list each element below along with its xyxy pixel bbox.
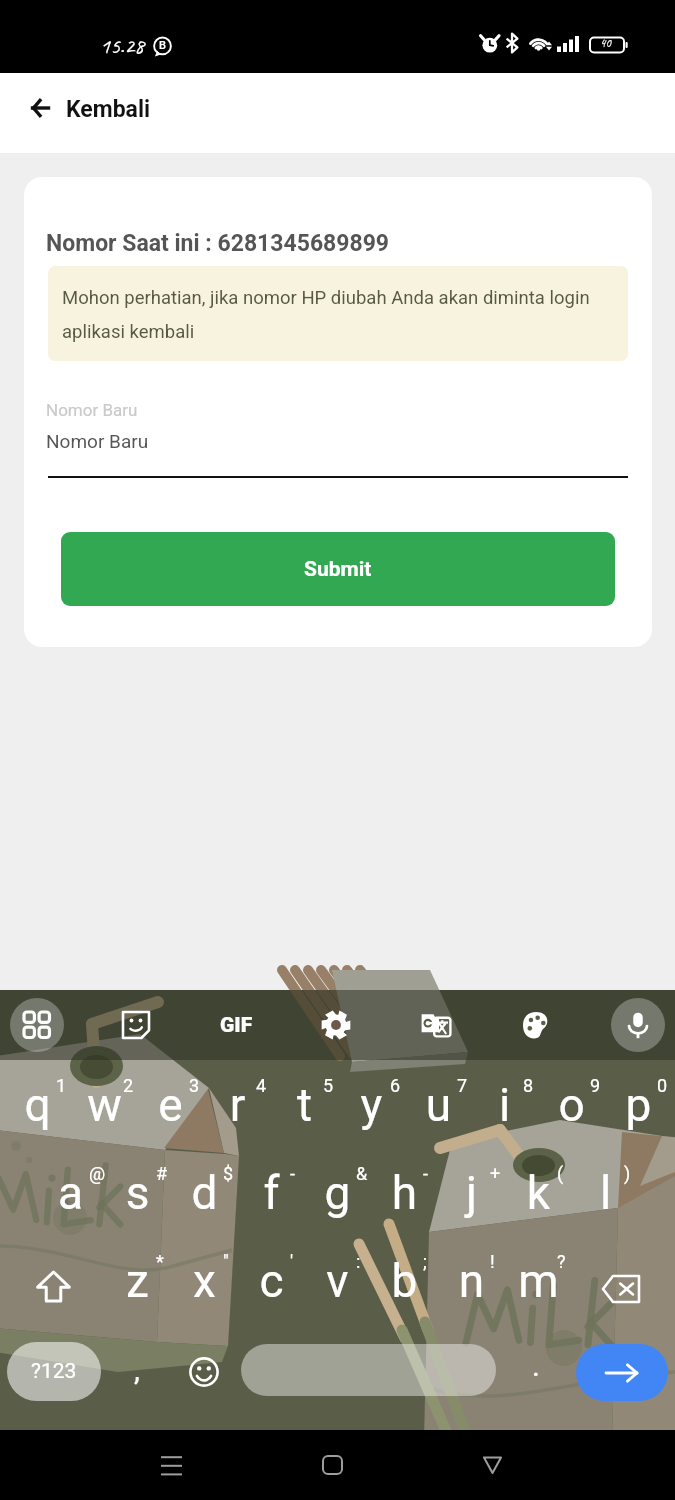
staticText: : xyxy=(356,1251,361,1272)
staticText: e xyxy=(137,1078,204,1132)
button[interactable]: Voice input xyxy=(611,998,665,1052)
staticText: r xyxy=(204,1078,271,1132)
button[interactable]: Back xyxy=(452,1436,532,1494)
button[interactable]: b xyxy=(371,1235,438,1325)
staticText: ( xyxy=(557,1163,564,1184)
button[interactable]: , xyxy=(109,1342,165,1401)
staticText: - xyxy=(423,1163,428,1184)
staticText: Nomor Baru xyxy=(46,400,138,420)
staticText: B xyxy=(159,39,166,52)
staticText: u xyxy=(405,1078,472,1132)
staticText: q xyxy=(4,1078,71,1132)
button[interactable]: g xyxy=(304,1147,371,1237)
button[interactable]: Enter xyxy=(576,1344,668,1401)
button[interactable]: z xyxy=(104,1235,171,1325)
staticText: n xyxy=(438,1254,505,1308)
button[interactable]: v xyxy=(304,1235,371,1325)
button[interactable]: ?123 xyxy=(7,1342,101,1401)
button[interactable]: e xyxy=(137,1059,204,1149)
button[interactable]: . xyxy=(508,1342,564,1401)
staticText: c xyxy=(238,1254,305,1308)
staticText: g xyxy=(304,1166,371,1220)
staticText: t xyxy=(271,1078,338,1132)
staticText: & xyxy=(356,1163,368,1184)
staticText: ?123 xyxy=(31,1359,77,1384)
staticText: Submit xyxy=(304,557,372,582)
button[interactable]: f xyxy=(238,1147,305,1237)
staticText: ! xyxy=(490,1251,495,1272)
staticText: z xyxy=(104,1254,171,1308)
button[interactable]: i xyxy=(471,1059,538,1149)
staticText: # xyxy=(156,1163,168,1184)
staticText: j xyxy=(438,1166,505,1220)
staticText: i xyxy=(471,1078,538,1132)
button[interactable]: u xyxy=(405,1059,472,1149)
staticText: Nomor Saat ini : 6281345689899 xyxy=(46,230,390,257)
button[interactable]: s xyxy=(104,1147,171,1237)
staticText: s xyxy=(104,1166,171,1220)
staticText: m xyxy=(505,1254,572,1308)
staticText: a xyxy=(37,1166,104,1220)
button[interactable]: m xyxy=(505,1235,572,1325)
staticText: 9 xyxy=(590,1075,601,1096)
button[interactable]: Space xyxy=(241,1344,496,1396)
staticText: 8 xyxy=(523,1075,534,1096)
button[interactable]: Translate xyxy=(409,998,463,1052)
staticText: 7 xyxy=(457,1075,468,1096)
staticText: ; xyxy=(423,1251,427,1272)
button[interactable]: Settings xyxy=(309,998,363,1052)
staticText: GIF xyxy=(220,1013,253,1038)
button[interactable]: Emoji xyxy=(176,1342,232,1401)
button[interactable]: Submit xyxy=(61,532,615,606)
button[interactable]: x xyxy=(171,1235,238,1325)
staticText: 4 xyxy=(256,1075,267,1096)
button[interactable]: Home xyxy=(292,1436,372,1494)
button[interactable]: p xyxy=(605,1059,672,1149)
button[interactable]: j xyxy=(438,1147,505,1237)
staticText: x xyxy=(171,1254,238,1308)
button[interactable]: d xyxy=(171,1147,238,1237)
staticText: 3 xyxy=(189,1075,200,1096)
button[interactable]: w xyxy=(71,1059,138,1149)
button[interactable]: Back xyxy=(14,81,67,134)
staticText: $ xyxy=(223,1163,234,1184)
button[interactable]: GIF xyxy=(209,998,263,1052)
button[interactable]: y xyxy=(338,1059,405,1149)
button[interactable]: r xyxy=(204,1059,271,1149)
button[interactable]: Stickers xyxy=(109,998,163,1052)
staticText: b xyxy=(371,1254,438,1308)
staticText: o xyxy=(538,1078,605,1132)
staticText: 2 xyxy=(123,1075,134,1096)
button[interactable]: t xyxy=(271,1059,338,1149)
staticText: . xyxy=(532,1348,540,1383)
button[interactable]: q xyxy=(4,1059,71,1149)
button[interactable]: Apps xyxy=(10,998,64,1052)
staticText: l xyxy=(572,1166,639,1220)
staticText: 6 xyxy=(390,1075,401,1096)
staticText: ? xyxy=(557,1251,566,1272)
button[interactable]: Theme xyxy=(509,998,563,1052)
staticText: " xyxy=(223,1251,229,1272)
staticText: Mohon perhatian, jika nomor HP diubah An… xyxy=(62,287,620,342)
staticText: 15.28 xyxy=(100,32,144,60)
staticText: Nomor Baru xyxy=(46,430,149,452)
staticText: 1 xyxy=(56,1075,67,1096)
staticText: ' xyxy=(290,1251,294,1272)
staticText: f xyxy=(238,1166,305,1220)
button[interactable]: l xyxy=(572,1147,639,1237)
button[interactable]: c xyxy=(238,1235,305,1325)
staticText: p xyxy=(605,1078,672,1132)
staticText: w xyxy=(71,1078,138,1132)
button[interactable]: Recent apps xyxy=(131,1436,211,1494)
button[interactable]: h xyxy=(371,1147,438,1237)
staticText: * xyxy=(156,1251,164,1272)
button[interactable]: a xyxy=(37,1147,104,1237)
button[interactable]: Shift xyxy=(19,1255,87,1317)
staticText: Kembali xyxy=(66,96,151,123)
button[interactable]: Backspace xyxy=(587,1258,655,1320)
button[interactable]: n xyxy=(438,1235,505,1325)
button[interactable]: k xyxy=(505,1147,572,1237)
staticText: , xyxy=(134,1352,140,1387)
staticText: v xyxy=(304,1254,371,1308)
button[interactable]: o xyxy=(538,1059,605,1149)
